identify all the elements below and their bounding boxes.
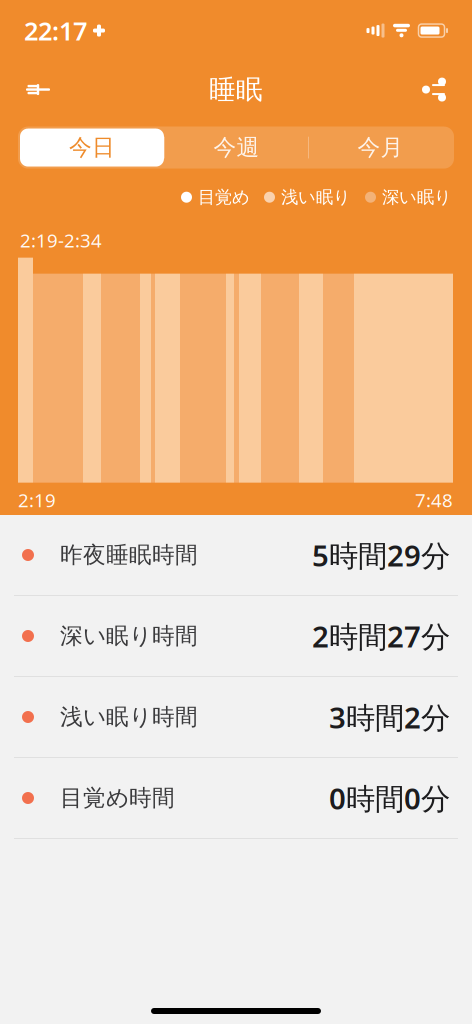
staticText: 2時間27分 — [312, 616, 450, 655]
staticText: 7:48 — [415, 488, 453, 512]
staticText: 目覚め時間 — [60, 784, 175, 812]
staticText: 昨夜睡眠時間 — [60, 541, 198, 569]
staticText: 5時間29分 — [312, 535, 450, 574]
button[interactable]: 目覚め時間 — [0, 758, 472, 838]
staticText: 0時間0分 — [329, 778, 450, 817]
button[interactable]: 昨夜睡眠時間 — [0, 515, 472, 595]
button[interactable]: 今週 — [165, 129, 308, 167]
staticText: 2:19-2:34 — [20, 228, 102, 253]
staticText: 目覚め — [198, 187, 250, 208]
button[interactable]: 今日 — [20, 129, 164, 167]
button[interactable]: 深い眠り時間 — [0, 596, 472, 676]
staticText: 浅い眠り — [281, 187, 351, 208]
staticText: 2:19 — [18, 488, 56, 512]
button[interactable]: 共有 — [410, 66, 458, 114]
staticText: 22:17 — [24, 14, 87, 47]
staticText: 睡眠 — [209, 73, 263, 106]
staticText: 深い眠り — [382, 187, 452, 208]
staticText: 今月 — [357, 134, 403, 161]
staticText: 今日 — [69, 134, 115, 161]
staticText: 深い眠り時間 — [60, 622, 198, 650]
staticText: 3時間2分 — [329, 697, 450, 736]
button[interactable]: 戻る — [14, 66, 62, 114]
button[interactable]: 今月 — [309, 129, 452, 167]
staticText: 今週 — [213, 134, 259, 161]
staticText: 浅い眠り時間 — [60, 703, 198, 731]
button[interactable]: 浅い眠り時間 — [0, 677, 472, 757]
